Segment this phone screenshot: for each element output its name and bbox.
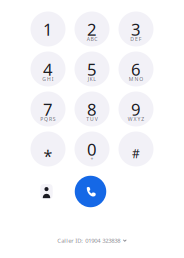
staticText: GHI: [42, 76, 54, 83]
staticText: TUV: [86, 116, 98, 123]
staticText: 2: [87, 18, 97, 41]
staticText: 5: [87, 58, 97, 81]
staticText: DEF: [130, 36, 142, 43]
staticText: PQRS: [40, 116, 56, 123]
button[interactable]: 9: [118, 91, 153, 126]
button[interactable]: 0: [74, 131, 109, 166]
button[interactable]: 4: [30, 51, 65, 86]
staticText: 9: [131, 98, 141, 121]
staticText: 1: [43, 18, 53, 41]
button[interactable]: 5: [74, 51, 109, 86]
button[interactable]: 8: [74, 91, 109, 126]
staticText: 4: [43, 58, 53, 81]
staticText: 3: [131, 18, 141, 41]
staticText: WXYZ: [128, 116, 144, 123]
staticText: 0: [87, 138, 97, 161]
button[interactable]: Call: [75, 176, 106, 207]
staticText: 7: [43, 98, 53, 121]
button[interactable]: 6: [118, 51, 153, 86]
staticText: *: [43, 145, 52, 166]
staticText: ABC: [87, 36, 97, 43]
button[interactable]: 3: [118, 11, 153, 46]
staticText: Caller ID: 01904 323838: [57, 236, 120, 244]
button[interactable]: 2: [74, 11, 109, 46]
button[interactable]: Contacts: [40, 184, 53, 199]
staticText: #: [132, 145, 140, 162]
staticText: JKL: [88, 76, 96, 83]
button[interactable]: 1: [30, 11, 65, 46]
staticText: 8: [87, 98, 97, 121]
staticText: MNO: [129, 76, 143, 83]
staticText: +: [90, 156, 93, 163]
button[interactable]: *: [30, 131, 65, 166]
button[interactable]: #: [118, 131, 153, 166]
button[interactable]: Caller ID: 01904 323838: [57, 236, 127, 244]
staticText: 6: [131, 58, 141, 81]
button[interactable]: 7: [30, 91, 65, 126]
